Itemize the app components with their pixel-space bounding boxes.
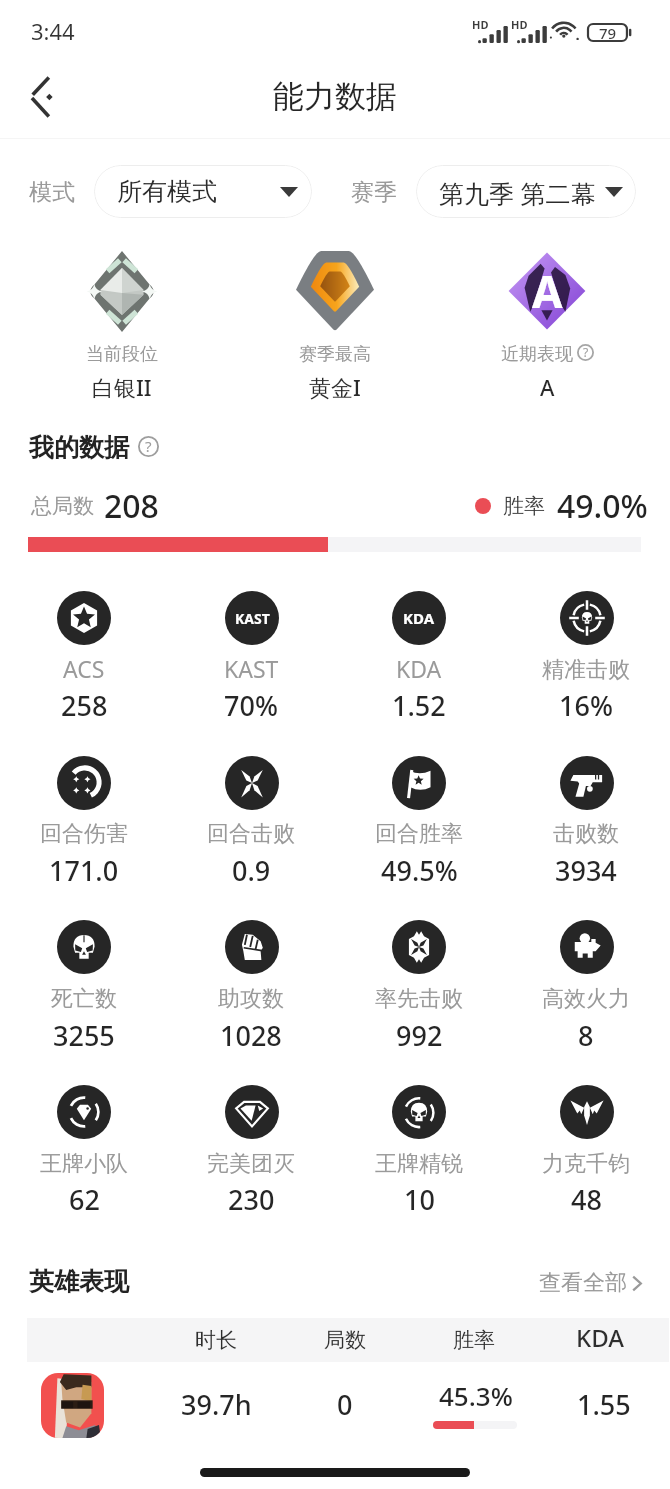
staticText: A (532, 261, 563, 321)
staticText: 白银II (92, 372, 152, 402)
staticText: 39.7h (181, 1386, 252, 1423)
button[interactable]: KAST (168, 591, 335, 721)
staticText: ACS (63, 653, 105, 684)
staticText: 208 (104, 484, 159, 528)
staticText: 回合击败 (207, 820, 295, 848)
staticText: 完美团灭 (207, 1150, 295, 1178)
staticText: 所有模式 (117, 176, 217, 207)
staticText: 49.0% (557, 484, 648, 528)
button[interactable] (335, 756, 502, 886)
button[interactable] (168, 920, 335, 1050)
staticText: 230 (228, 1181, 275, 1218)
staticText: 992 (396, 1017, 443, 1054)
button[interactable]: KDA (335, 591, 502, 721)
staticText: 49.5% (381, 852, 458, 889)
staticText: 黄金I (309, 372, 361, 402)
button[interactable] (503, 1085, 670, 1215)
staticText: 能力数据 (273, 77, 397, 116)
staticText: 回合伤害 (40, 820, 128, 848)
staticText: 击败数 (553, 820, 619, 848)
staticText: 力克千钧 (542, 1150, 630, 1178)
staticText: 258 (61, 687, 108, 724)
staticText: 王牌精锐 (375, 1150, 463, 1178)
staticText: 第九季 第二幕 (439, 176, 596, 210)
button[interactable]: Agent (41, 1373, 104, 1438)
staticText: KDA (396, 653, 442, 684)
staticText: 王牌小队 (40, 1150, 128, 1178)
button[interactable] (0, 756, 167, 886)
staticText: 回合胜率 (375, 820, 463, 848)
button[interactable] (335, 920, 502, 1050)
staticText: 英雄表现 (29, 1266, 129, 1297)
button[interactable] (0, 920, 167, 1050)
staticText: 3255 (53, 1017, 115, 1054)
staticText: 赛季 (351, 178, 397, 207)
staticText: 赛季最高 (299, 343, 371, 366)
button[interactable] (503, 920, 670, 1050)
staticText: KAST (235, 609, 270, 628)
staticText: 70% (224, 687, 278, 724)
staticText: 当前段位 (86, 343, 158, 366)
staticText: 死亡数 (51, 985, 117, 1013)
staticText: 胜率 (503, 493, 545, 519)
staticText: 率先击败 (375, 985, 463, 1013)
button[interactable] (168, 1085, 335, 1215)
staticText: KDA (403, 608, 435, 628)
button[interactable]: 第九季 第二幕 (416, 165, 636, 218)
staticText: 3934 (555, 852, 617, 889)
staticText: 胜率 (453, 1327, 495, 1353)
staticText: 79 (599, 23, 617, 40)
staticText: 模式 (29, 178, 75, 207)
button[interactable] (0, 1085, 167, 1215)
staticText: HD (472, 17, 489, 32)
staticText: 1.55 (577, 1386, 631, 1423)
staticText: KDA (576, 1321, 624, 1354)
button[interactable]: 查看全部 (539, 1269, 642, 1297)
staticText: ? (583, 344, 589, 361)
staticText: 16% (559, 687, 613, 724)
staticText: 精准击败 (542, 656, 630, 684)
button[interactable] (335, 1085, 502, 1215)
staticText: 局数 (324, 1327, 366, 1353)
button[interactable] (168, 756, 335, 886)
staticText: 近期表现 (501, 343, 573, 366)
staticText: 助攻数 (218, 985, 284, 1013)
staticText: 3:44 (31, 16, 75, 46)
staticText: 0 (337, 1386, 353, 1423)
staticText: 171.0 (49, 852, 119, 889)
staticText: KAST (224, 653, 279, 684)
staticText: 高效火力 (542, 985, 630, 1013)
staticText: 8 (578, 1017, 594, 1054)
staticText: 1028 (220, 1017, 282, 1054)
staticText: HD (511, 17, 528, 32)
staticText: 1.52 (392, 687, 446, 724)
button[interactable] (503, 756, 670, 886)
button[interactable] (0, 591, 167, 721)
button[interactable]: 所有模式 (94, 165, 312, 218)
staticText: 查看全部 (539, 1269, 627, 1297)
staticText: 总局数 (31, 493, 94, 519)
staticText: 时长 (195, 1327, 237, 1353)
staticText: 0.9 (232, 852, 271, 889)
staticText: 10 (404, 1181, 435, 1218)
button[interactable]: Back (11, 68, 69, 126)
button[interactable] (503, 591, 670, 721)
staticText: 我的数据 (29, 432, 129, 463)
staticText: 62 (69, 1181, 100, 1218)
staticText: 45.3% (439, 1378, 513, 1413)
staticText: ? (145, 436, 152, 457)
staticText: 48 (571, 1181, 602, 1218)
staticText: A (540, 372, 555, 402)
